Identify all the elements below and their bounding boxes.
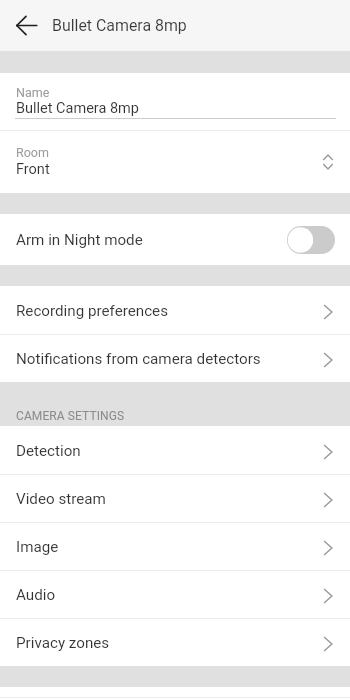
staticText: Video stream	[16, 490, 106, 508]
button[interactable]: Video stream	[0, 474, 350, 522]
staticText: Notifications from camera detectors	[16, 350, 261, 368]
button[interactable]: Room	[0, 131, 350, 193]
button[interactable]: Privacy zones	[0, 618, 350, 666]
staticText: Room	[16, 145, 49, 160]
button[interactable]: Arm in Night mode toggle, off	[287, 226, 335, 254]
staticText: Name	[16, 85, 50, 100]
button[interactable]: Notifications from camera detectors	[0, 334, 350, 382]
staticText: CAMERA SETTINGS	[16, 409, 125, 423]
button[interactable]: Audio	[0, 570, 350, 618]
staticText: Bullet Camera 8mp	[16, 100, 139, 117]
button[interactable]: Back	[0, 0, 52, 51]
staticText: Front	[16, 161, 50, 178]
staticText: Privacy zones	[16, 634, 110, 652]
staticText: Arm in Night mode	[16, 231, 143, 249]
staticText: Detection	[16, 442, 81, 460]
staticText: Recording preferences	[16, 302, 169, 320]
button[interactable]: Recording preferences	[0, 286, 350, 334]
other: Change room	[319, 153, 337, 171]
staticText: Bullet Camera 8mp	[52, 16, 187, 35]
button[interactable]: Name	[0, 73, 350, 130]
staticText: Audio	[16, 586, 56, 604]
button[interactable]: Arm in Night mode	[0, 214, 350, 265]
button[interactable]: Detection	[0, 426, 350, 474]
button[interactable]: Image	[0, 522, 350, 570]
staticText: Image	[16, 538, 59, 556]
